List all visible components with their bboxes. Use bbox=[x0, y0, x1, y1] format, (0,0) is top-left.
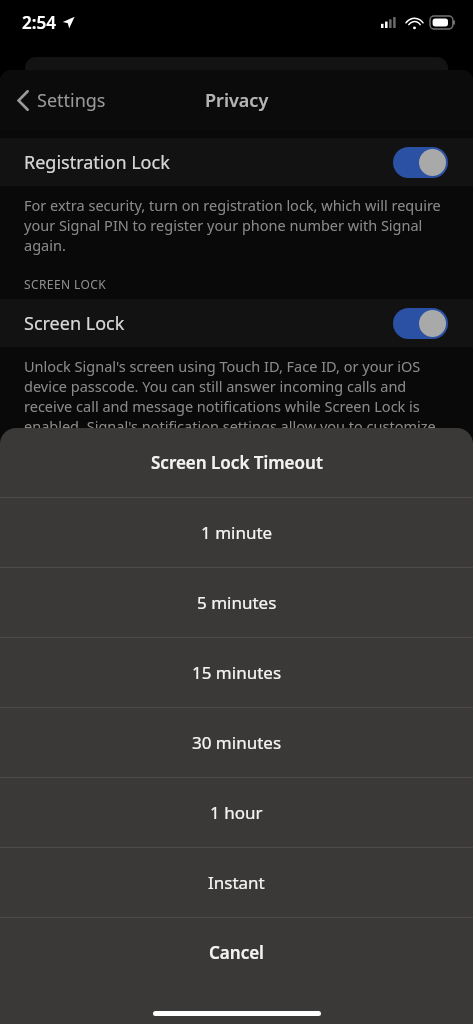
button[interactable]: Toggle bbox=[393, 147, 448, 178]
button[interactable]: 15 minutes bbox=[0, 638, 473, 707]
staticText: Privacy bbox=[205, 88, 269, 113]
button[interactable]: Settings bbox=[13, 82, 110, 119]
staticText: 15 minutes bbox=[192, 661, 282, 684]
button[interactable]: Instant bbox=[0, 848, 473, 917]
button[interactable]: Toggle bbox=[393, 308, 448, 339]
staticText: Screen Lock bbox=[24, 311, 125, 336]
staticText: Registration Lock bbox=[24, 150, 170, 175]
staticText: 30 minutes bbox=[192, 731, 282, 754]
staticText: 5 minutes bbox=[197, 591, 277, 614]
staticText: 1 hour bbox=[210, 801, 263, 824]
staticText: 2:54 bbox=[22, 11, 56, 34]
button[interactable]: 1 hour bbox=[0, 778, 473, 847]
button[interactable]: 30 minutes bbox=[0, 708, 473, 777]
button[interactable]: 5 minutes bbox=[0, 568, 473, 637]
staticText: Instant bbox=[208, 871, 265, 894]
staticText: For extra security, turn on registration… bbox=[24, 195, 449, 255]
staticText: 1 minute bbox=[201, 521, 273, 544]
staticText: Unlock Signal's screen using Touch ID, F… bbox=[24, 356, 449, 456]
staticText: SCREEN LOCK bbox=[24, 276, 107, 292]
staticText: Settings bbox=[37, 88, 106, 113]
button[interactable]: Cancel bbox=[0, 918, 473, 987]
button[interactable]: Screen Lock bbox=[0, 299, 473, 347]
button[interactable]: Registration Lock bbox=[0, 138, 473, 186]
button[interactable]: 1 minute bbox=[0, 498, 473, 567]
staticText: Cancel bbox=[209, 941, 264, 964]
staticText: Screen Lock Timeout bbox=[151, 451, 323, 474]
